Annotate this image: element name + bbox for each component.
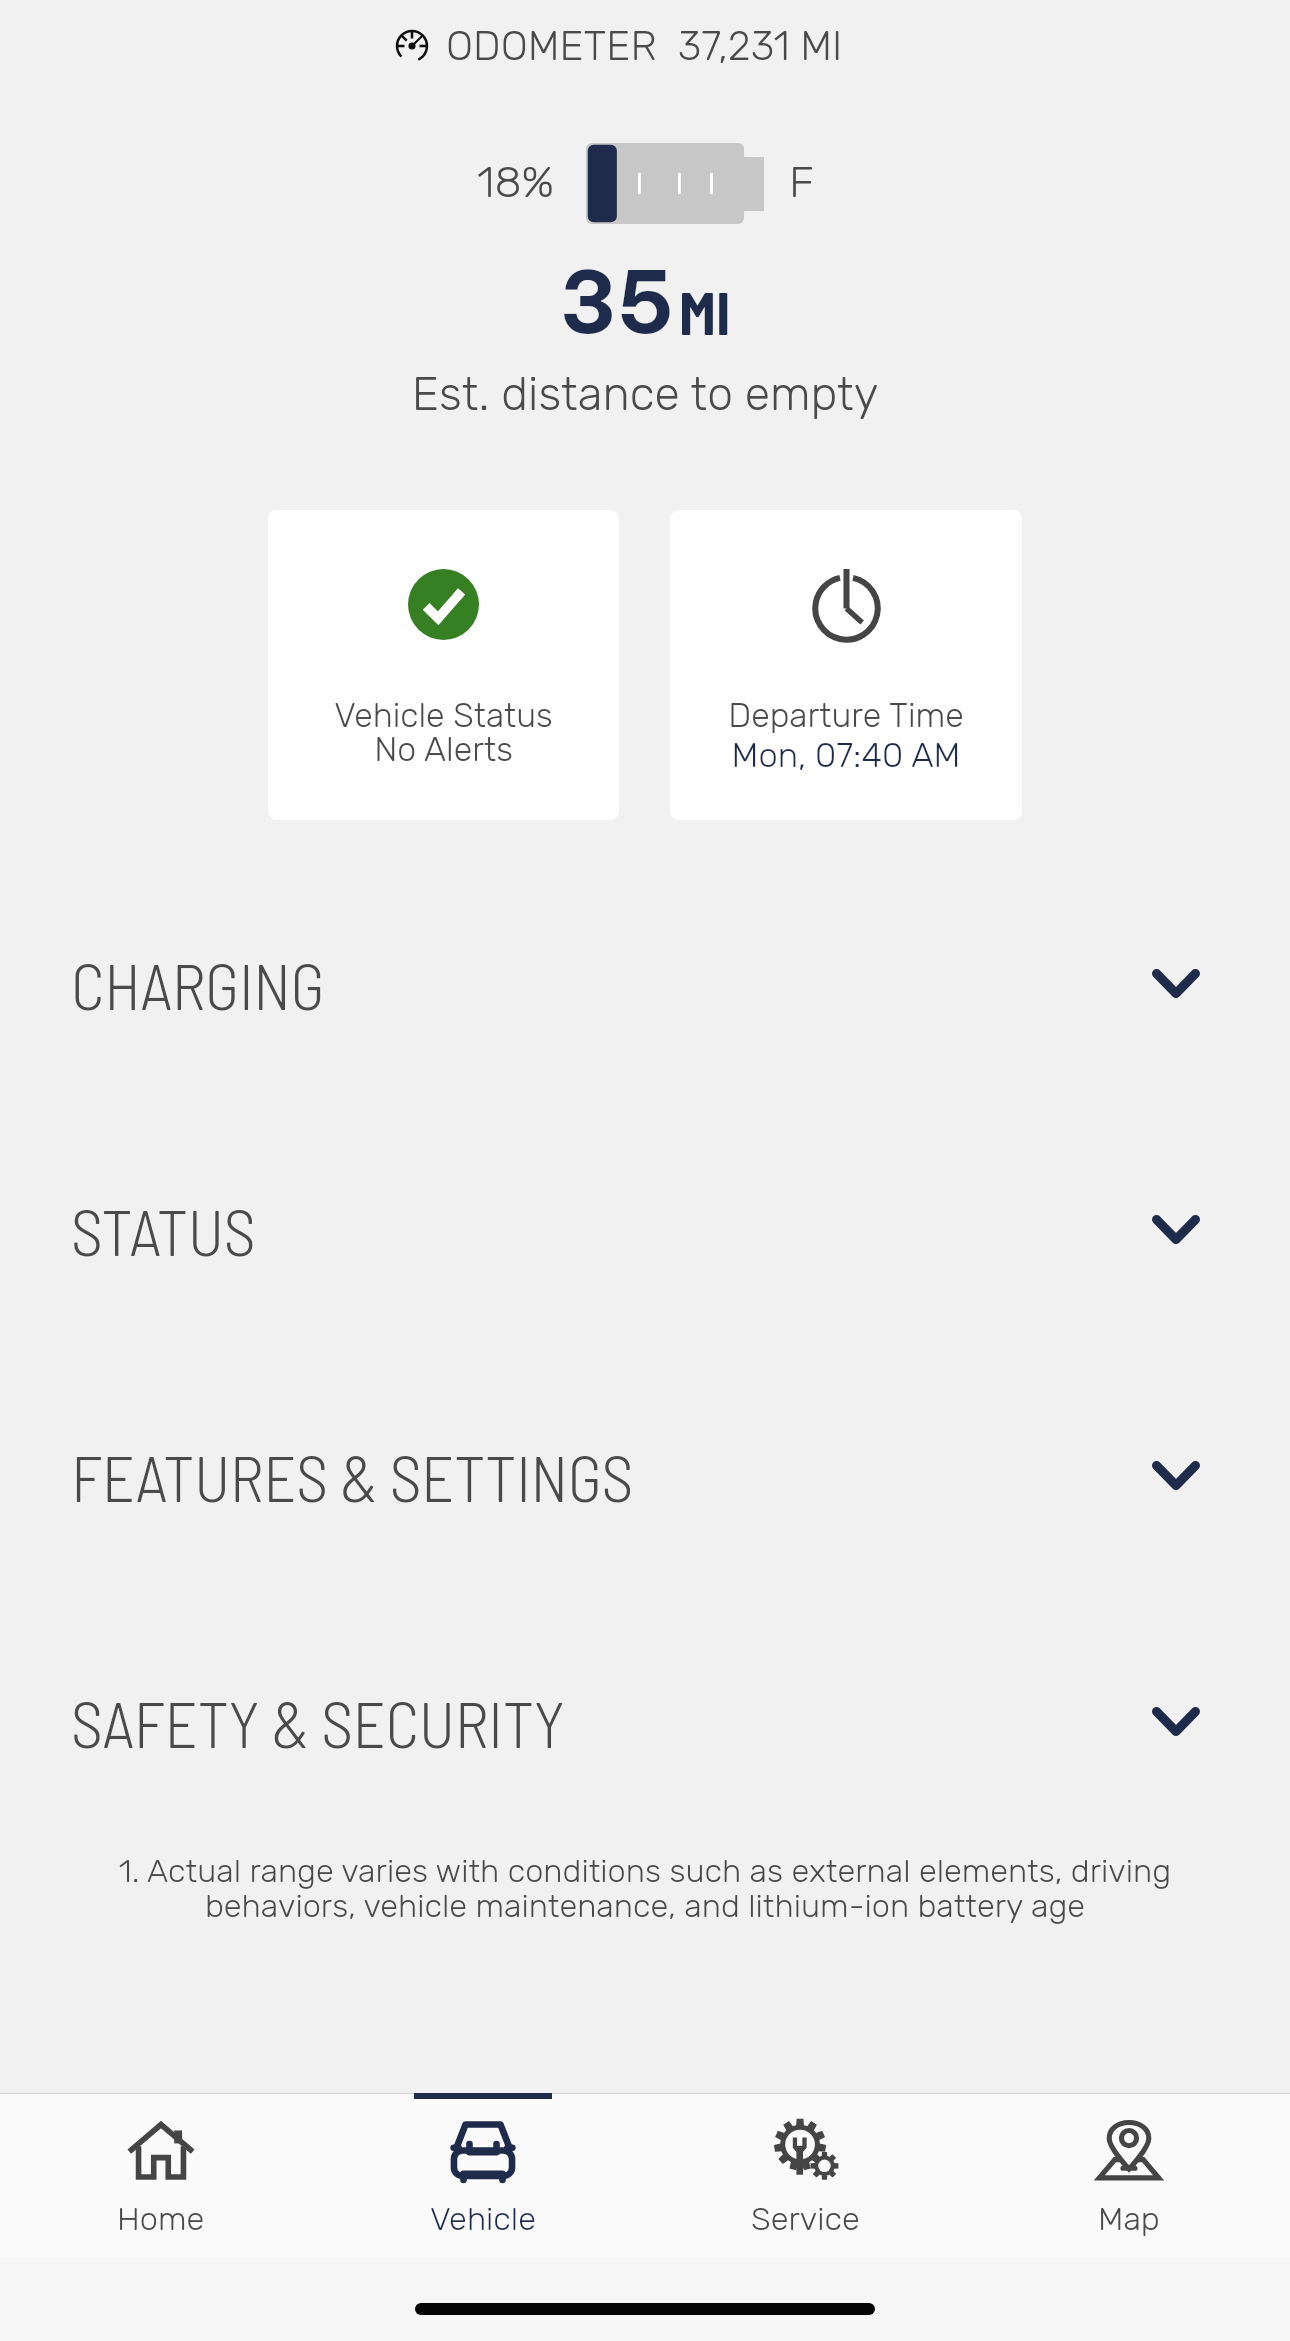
staticText: SAFETY & SECURITY: [71, 1683, 565, 1760]
button[interactable]: Departure Time: [670, 510, 1022, 820]
staticText: Home: [117, 2200, 205, 2239]
button[interactable]: FEATURES & SETTINGS: [0, 1352, 1290, 1598]
staticText: STATUS: [71, 1191, 256, 1268]
staticText: 18%: [477, 156, 554, 208]
button[interactable]: Vehicle: [322, 2093, 644, 2243]
staticText: ODOMETER 37,231 MI: [446, 22, 843, 70]
button[interactable]: STATUS: [0, 1106, 1290, 1352]
button[interactable]: Vehicle Status No Alerts: [268, 510, 619, 820]
staticText: 1. Actual range varies with conditions s…: [114, 1852, 1176, 1925]
staticText: Map: [1098, 2200, 1160, 2239]
staticText: Vehicle: [430, 2200, 536, 2239]
button[interactable]: CHARGING: [0, 860, 1290, 1106]
button[interactable]: Home: [0, 2093, 322, 2243]
staticText: 35: [559, 247, 674, 355]
button[interactable]: Service: [644, 2093, 967, 2243]
staticText: F: [789, 156, 814, 208]
staticText: Mon, 07:40 AM: [670, 735, 1022, 776]
staticText: MI: [679, 276, 731, 346]
button[interactable]: Map: [967, 2093, 1290, 2243]
staticText: FEATURES & SETTINGS: [71, 1437, 633, 1514]
staticText: Vehicle Status No Alerts: [268, 695, 619, 769]
staticText: Departure Time: [670, 695, 1022, 735]
staticText: Service: [751, 2200, 860, 2239]
staticText: Est. distance to empty: [0, 367, 1290, 422]
button[interactable]: SAFETY & SECURITY: [0, 1598, 1290, 1844]
staticText: CHARGING: [71, 945, 325, 1022]
